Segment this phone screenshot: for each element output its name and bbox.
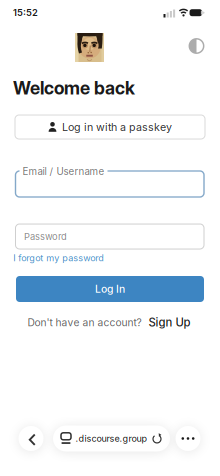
staticText: Welcome back <box>13 77 135 99</box>
staticText: Log in with a passkey <box>62 120 172 133</box>
staticText: Log In <box>95 283 125 295</box>
staticText: 15:52 <box>13 7 38 18</box>
button[interactable]: Back <box>18 426 43 451</box>
button[interactable]: Address bar: .discourse.group <box>53 425 170 451</box>
staticText: I forgot my password <box>13 252 104 263</box>
staticText: Email / Username <box>22 166 104 177</box>
staticText: .discourse.group <box>75 433 147 444</box>
button[interactable]: Log In <box>16 276 204 302</box>
button[interactable]: Toggle colour scheme <box>188 38 204 54</box>
staticText: Don't have an account? <box>27 316 141 329</box>
staticText: Sign Up <box>148 316 190 329</box>
button[interactable]: Sign Up <box>148 316 190 329</box>
button[interactable]: More <box>175 426 200 451</box>
staticText: Password <box>24 231 67 242</box>
button[interactable]: Log in with a passkey <box>15 115 205 139</box>
button[interactable]: I forgot my password <box>13 252 104 263</box>
